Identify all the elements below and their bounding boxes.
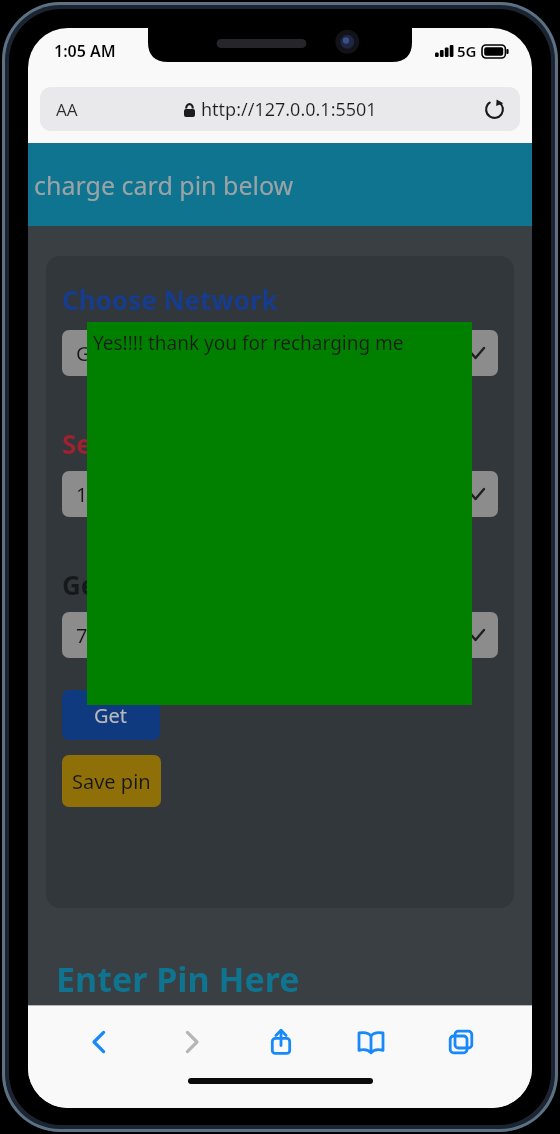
- button[interactable]: Reload: [480, 95, 508, 123]
- staticText: Get: [94, 702, 128, 729]
- button[interactable]: Save pin: [62, 755, 161, 807]
- staticText: Save pin: [72, 768, 151, 795]
- button[interactable]: Bookmarks: [326, 1014, 416, 1070]
- button[interactable]: Tabs: [416, 1014, 506, 1070]
- staticText: GLO: [76, 340, 117, 367]
- button[interactable]: 100: [62, 471, 498, 517]
- button[interactable]: GLO: [62, 330, 498, 376]
- staticText: Choose Network: [62, 282, 278, 317]
- staticText: AA: [56, 98, 78, 121]
- button[interactable]: Get: [62, 690, 160, 740]
- staticText: Enter Pin Here: [56, 956, 300, 1002]
- staticText: charge card pin below: [34, 168, 294, 202]
- staticText: Get pin: [62, 567, 156, 602]
- staticText: 100: [76, 481, 111, 508]
- button[interactable]: Forward: [145, 1014, 236, 1070]
- button[interactable]: Back: [54, 1014, 145, 1070]
- staticText: Yes!!!! thank you for recharging me: [93, 330, 404, 356]
- staticText: 5G: [457, 41, 477, 61]
- button[interactable]: Share: [236, 1014, 326, 1070]
- staticText: http://127.0.0.1:5501: [201, 97, 377, 122]
- staticText: 7890: [76, 622, 122, 649]
- button[interactable]: AA: [40, 87, 520, 131]
- staticText: Select amount: [62, 426, 249, 461]
- button[interactable]: 7890: [62, 612, 498, 658]
- staticText: 1:05 AM: [54, 40, 116, 62]
